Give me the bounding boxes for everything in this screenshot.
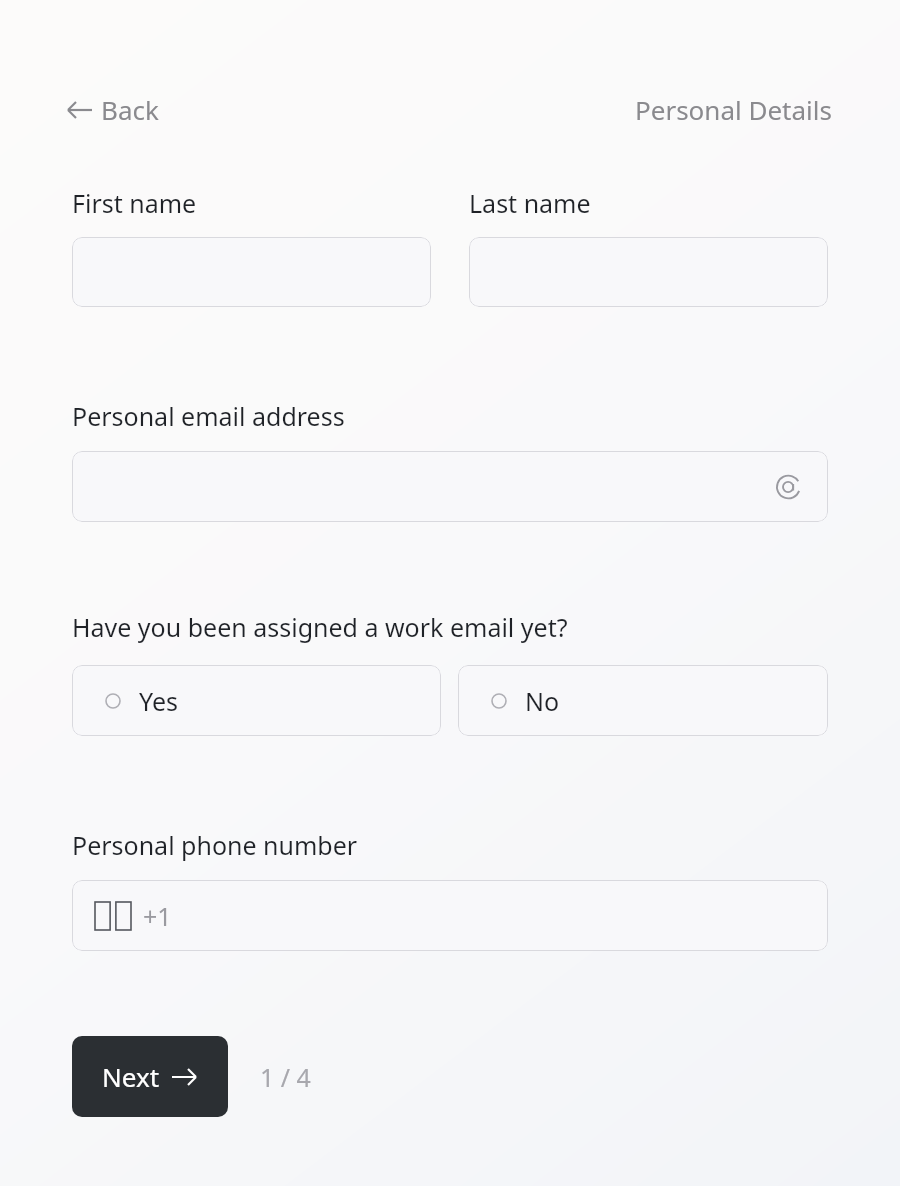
staticText: First name [72, 186, 197, 220]
staticText: Next [102, 1059, 160, 1094]
button[interactable]: No [458, 665, 828, 736]
button[interactable] [469, 237, 828, 307]
button[interactable]: Next [72, 1036, 228, 1117]
staticText: Have you been assigned a work email yet? [72, 610, 568, 644]
staticText: +1 [143, 899, 172, 933]
staticText: 1 / 4 [260, 1060, 311, 1094]
staticText: Last name [469, 186, 591, 220]
button[interactable]: +1 [72, 880, 828, 951]
button[interactable]: Back [66, 88, 159, 131]
button[interactable]: Yes [72, 665, 441, 736]
button[interactable] [72, 237, 431, 307]
staticText: Personal Details [635, 92, 832, 127]
staticText: Personal phone number [72, 828, 358, 862]
staticText: Back [101, 92, 159, 127]
staticText: No [525, 684, 560, 718]
staticText: Personal email address [72, 399, 345, 433]
button[interactable] [72, 451, 828, 522]
staticText: Yes [139, 684, 178, 718]
